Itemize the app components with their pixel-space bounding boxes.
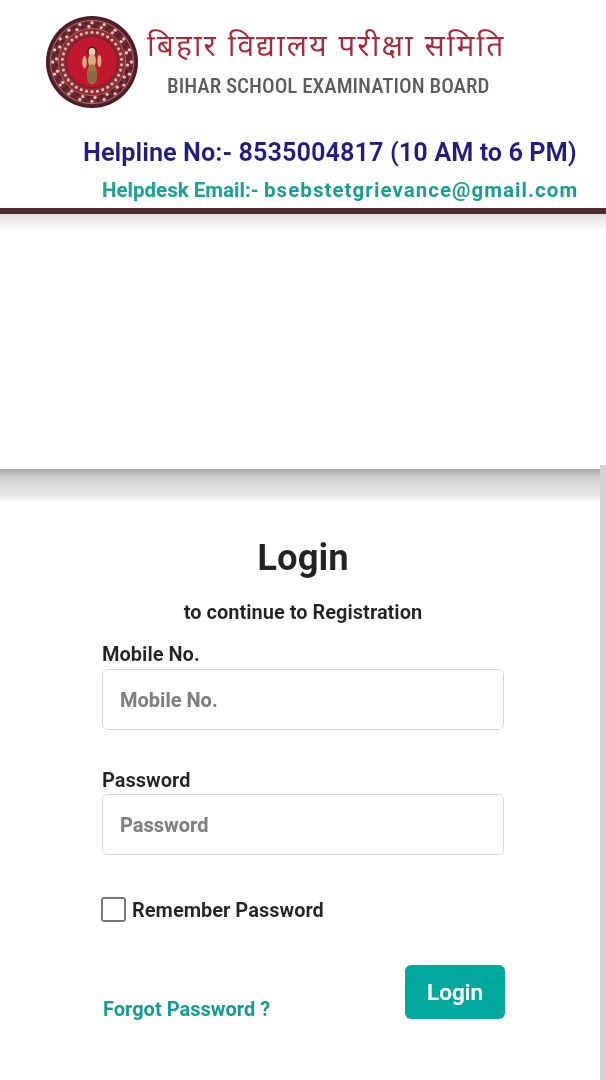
button[interactable]: Forgot Password ? (99, 988, 275, 1026)
staticText: Mobile No. (120, 688, 218, 711)
staticText: BIHAR SCHOOL EXAMINATION BOARD (167, 74, 490, 99)
staticText: Mobile No. (102, 642, 200, 665)
staticText: Helpdesk Email:- (102, 178, 259, 202)
staticText: Password (120, 813, 209, 836)
staticText: Forgot Password ? (103, 997, 271, 1020)
button[interactable]: Remember Password (101, 894, 325, 926)
staticText: to continue to Registration (0, 600, 606, 623)
staticText: bsebstetgrievance@gmail.com (264, 178, 579, 202)
button[interactable]: Mobile No. (102, 669, 504, 730)
staticText: Helpline No:- 8535004817 (10 AM to 6 PM) (83, 138, 577, 168)
staticText: बिहार विद्यालय परीक्षा समिति (147, 29, 506, 68)
staticText: Password (102, 768, 191, 791)
staticText: Login (0, 536, 606, 579)
button[interactable]: Login (405, 965, 505, 1019)
other: Bihar School Examination Board logo (46, 16, 138, 108)
button[interactable]: Password (102, 794, 504, 855)
staticText: Remember Password (132, 898, 324, 921)
staticText: Login (427, 979, 484, 1005)
